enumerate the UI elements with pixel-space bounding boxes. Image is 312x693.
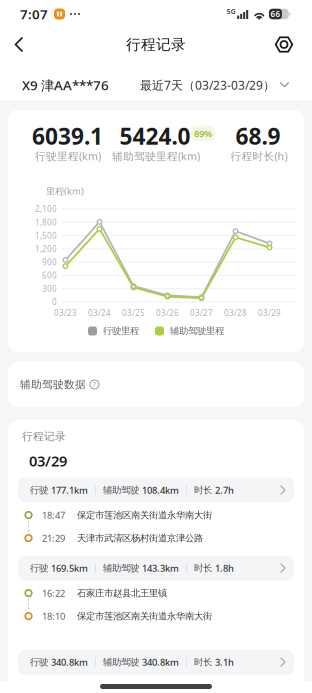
- staticText: 辅助驾驶数据: [20, 378, 86, 391]
- button[interactable]: 行驶: [8, 478, 304, 503]
- staticText: 行驶里程: [103, 325, 139, 337]
- staticText: 169.5km: [51, 562, 88, 574]
- staticText: 里程(km): [46, 185, 84, 197]
- button[interactable]: 最近7天（03/23-03/29）: [140, 77, 289, 93]
- staticText: 辅助驾驶: [103, 656, 139, 668]
- staticText: 340.8km: [142, 656, 179, 668]
- staticText: 石家庄市赵县北王里镇: [77, 587, 167, 599]
- staticText: 1,200: [35, 243, 57, 254]
- staticText: 600: [42, 270, 57, 281]
- staticText: 18:10: [42, 610, 65, 622]
- staticText: 03/29: [29, 451, 67, 471]
- button[interactable]: 行驶: [8, 650, 304, 675]
- staticText: 行程记录: [22, 430, 66, 443]
- staticText: 03/25: [122, 308, 145, 318]
- staticText: 03/24: [88, 308, 111, 318]
- button[interactable]: 辅助驾驶数据: [8, 362, 304, 407]
- button[interactable]: Back: [0, 29, 24, 60]
- staticText: 03/27: [190, 308, 213, 318]
- staticText: 保定市莲池区南关街道永华南大街: [77, 610, 212, 622]
- staticText: 天津市武清区杨村街道京津公路: [77, 681, 203, 693]
- staticText: 177.1km: [51, 484, 88, 496]
- staticText: 68.9: [235, 121, 280, 151]
- staticText: 5G: [227, 7, 236, 16]
- staticText: 03/29: [258, 308, 281, 318]
- staticText: 2.7h: [215, 484, 234, 496]
- staticText: ?: [93, 380, 96, 389]
- staticText: 3.1h: [215, 656, 234, 668]
- staticText: 辅助驾驶: [103, 484, 139, 496]
- button[interactable]: Settings: [274, 28, 312, 60]
- staticText: 18:47: [42, 509, 65, 521]
- staticText: 03/28: [224, 308, 247, 318]
- staticText: 行程记录: [126, 35, 186, 53]
- staticText: 6039.1: [32, 121, 103, 151]
- staticText: 89%: [194, 127, 212, 140]
- staticText: 1,800: [35, 217, 57, 228]
- staticText: 行驶里程(km): [35, 149, 101, 163]
- staticText: 时长: [194, 484, 212, 496]
- staticText: 143.3km: [142, 562, 179, 574]
- staticText: 66: [270, 9, 280, 19]
- staticText: 7:07: [20, 5, 48, 23]
- button[interactable]: X9 津AA***76: [22, 76, 109, 94]
- staticText: 天津市武清区杨村街道京津公路: [77, 532, 203, 544]
- staticText: 时长: [194, 656, 212, 668]
- staticText: 行程时长(h): [230, 149, 287, 163]
- staticText: 5424.0: [119, 121, 190, 151]
- staticText: 保定市莲池区南关街道永华南大街: [77, 509, 212, 521]
- staticText: 行驶: [30, 656, 48, 668]
- staticText: 2,100: [35, 204, 57, 214]
- staticText: 辅助驾驶: [103, 562, 139, 574]
- staticText: 辅助驾驶里程: [170, 325, 224, 337]
- staticText: 900: [42, 257, 57, 267]
- staticText: 108.4km: [142, 484, 179, 496]
- staticText: 03/23: [54, 308, 77, 318]
- staticText: 300: [42, 283, 57, 294]
- staticText: X9 津AA***76: [22, 76, 109, 94]
- staticText: 行驶: [30, 562, 48, 574]
- staticText: 最近7天（03/23-03/29）: [140, 77, 275, 93]
- staticText: 0: [52, 297, 57, 307]
- staticText: 03/26: [156, 308, 179, 318]
- staticText: 16:22: [42, 587, 65, 599]
- staticText: 辅助驾驶里程(km): [112, 149, 200, 163]
- staticText: 时长: [194, 562, 212, 574]
- staticText: 21:29: [42, 532, 65, 544]
- staticText: 340.8km: [51, 656, 88, 668]
- staticText: 行驶: [30, 484, 48, 496]
- staticText: 1.8h: [215, 562, 234, 574]
- button[interactable]: 行驶: [8, 556, 304, 581]
- staticText: 1,500: [35, 230, 57, 241]
